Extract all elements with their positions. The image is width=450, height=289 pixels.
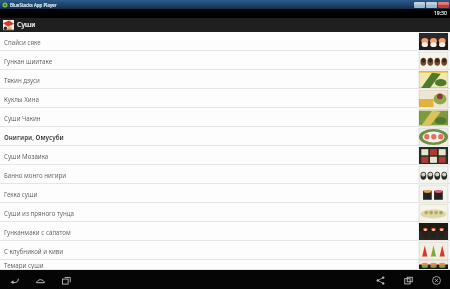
button[interactable]: Суши Мозаика (0, 146, 450, 165)
staticText: 19:30 (434, 10, 447, 17)
button[interactable]: Куклы Хина (0, 89, 450, 108)
button[interactable]: Home (33, 273, 47, 287)
staticText: BlueStacks App Player (10, 2, 57, 8)
button[interactable]: Онигири, Омусуби (0, 127, 450, 146)
button[interactable]: Суши из пряного тунца (0, 203, 450, 222)
button[interactable]: Window button (414, 2, 425, 8)
button[interactable]: Screenshot (401, 273, 415, 287)
staticText: С клубникой и киви (4, 247, 64, 255)
staticText: Онигири, Омусуби (4, 133, 64, 141)
button[interactable]: Close (429, 273, 443, 287)
button[interactable]: Суши (0, 18, 450, 32)
button[interactable]: Back (7, 273, 21, 287)
staticText: Суши Мозаика (4, 152, 49, 160)
button[interactable]: Recents (59, 273, 73, 287)
staticText: Гункан шиитаке (4, 57, 53, 65)
button[interactable]: Темари суши (0, 260, 450, 270)
staticText: Суши Чакин (4, 114, 41, 122)
button[interactable]: Спайси сяке (0, 32, 450, 51)
button[interactable]: Гунканмаки с салатом (0, 222, 450, 241)
button[interactable]: Гункан шиитаке (0, 51, 450, 70)
staticText: Суши (17, 20, 36, 30)
button[interactable]: Гекка суши (0, 184, 450, 203)
staticText: Темари суши (4, 261, 44, 269)
staticText: Куклы Хина (4, 95, 39, 103)
button[interactable]: Тякин дзуси (0, 70, 450, 89)
staticText: Суши из пряного тунца (4, 209, 75, 217)
staticText: Гунканмаки с салатом (4, 228, 71, 236)
staticText: Гекка суши (4, 190, 38, 198)
button[interactable]: С клубникой и киви (0, 241, 450, 260)
button[interactable]: Share (373, 273, 387, 287)
staticText: Банно монго нигири (4, 171, 67, 179)
button[interactable]: Window button (438, 2, 449, 8)
button[interactable]: Window button (426, 2, 437, 8)
button[interactable]: Суши Чакин (0, 108, 450, 127)
staticText: Тякин дзуси (4, 76, 40, 84)
staticText: Спайси сяке (4, 38, 41, 46)
button[interactable]: Банно монго нигири (0, 165, 450, 184)
